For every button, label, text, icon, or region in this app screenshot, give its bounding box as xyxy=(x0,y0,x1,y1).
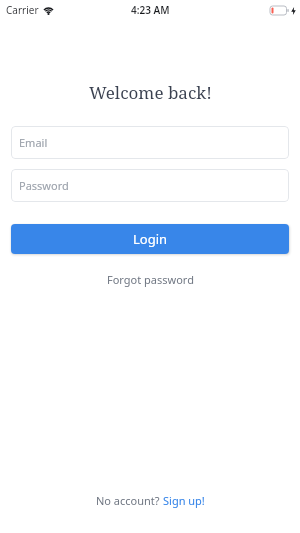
button[interactable]: Login xyxy=(11,224,289,254)
staticText: Email xyxy=(19,135,48,150)
staticText: Sign up! xyxy=(163,493,205,508)
staticText: 4:23 AM xyxy=(131,3,170,17)
staticText: Carrier xyxy=(6,3,39,17)
button[interactable]: Email xyxy=(11,126,289,159)
button[interactable]: Password xyxy=(11,169,289,202)
button[interactable]: No account? xyxy=(96,493,205,508)
staticText: Login xyxy=(133,230,168,248)
staticText: Password xyxy=(19,178,69,193)
button[interactable]: Forgot password xyxy=(107,272,194,287)
staticText: Forgot password xyxy=(107,272,194,287)
staticText: No account? xyxy=(96,493,163,508)
staticText: Welcome back! xyxy=(89,81,212,104)
